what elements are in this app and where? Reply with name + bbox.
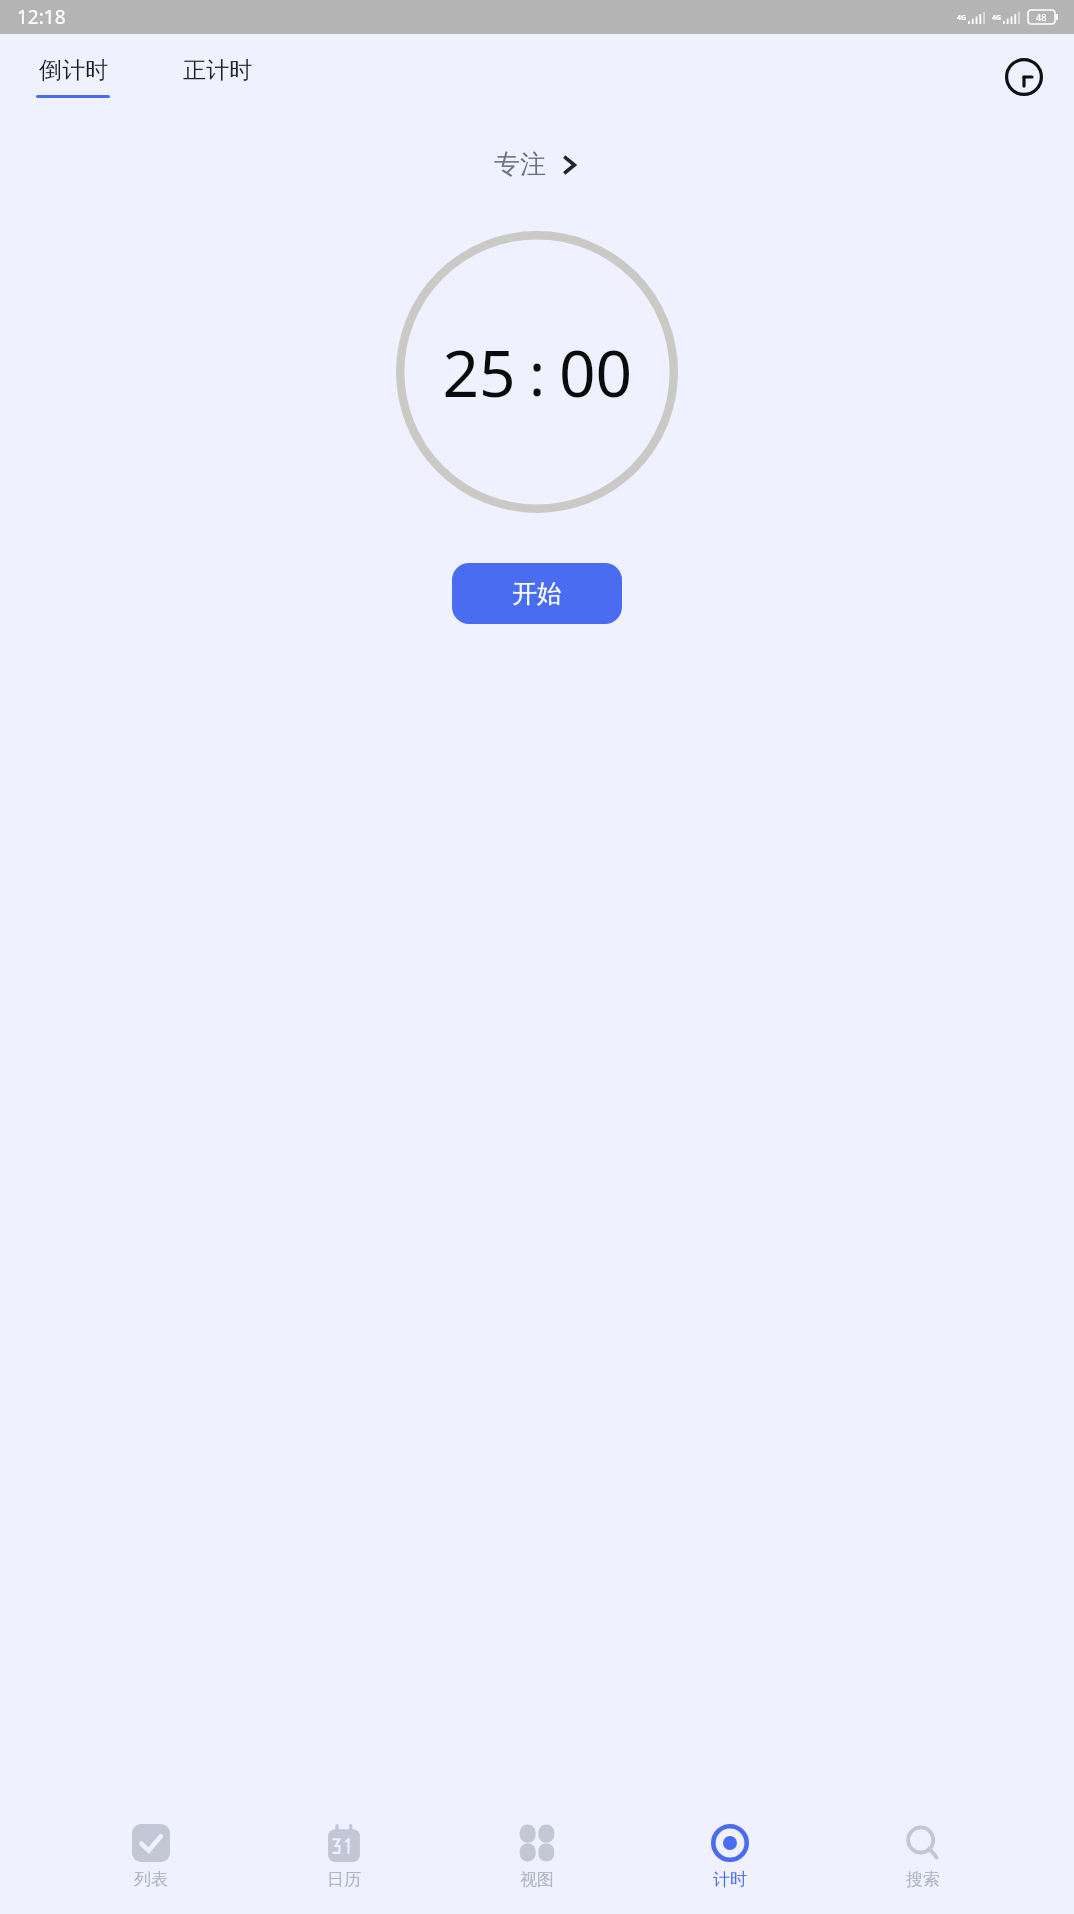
staticText: :: [529, 332, 546, 414]
staticText: 专注: [494, 148, 546, 181]
staticText: 00: [559, 329, 633, 416]
staticText: 4G: [957, 13, 967, 23]
staticText: 搜索: [906, 1869, 940, 1890]
button[interactable]: 倒计时: [14, 50, 132, 104]
button[interactable]: 视图: [495, 1806, 579, 1914]
staticText: 4G: [992, 13, 1002, 23]
button[interactable]: 开始: [452, 563, 622, 624]
button[interactable]: 专注: [0, 142, 1074, 187]
staticText: 视图: [520, 1869, 554, 1890]
staticText: 48: [1036, 11, 1047, 23]
button[interactable]: 日历: [302, 1806, 386, 1914]
staticText: 25: [442, 329, 516, 416]
staticText: 列表: [134, 1869, 168, 1890]
staticText: 开始: [512, 578, 562, 609]
staticText: 正计时: [183, 56, 252, 85]
button[interactable]: 历史记录: [996, 49, 1052, 105]
staticText: 计时: [713, 1869, 747, 1890]
button[interactable]: 列表: [109, 1806, 193, 1914]
button[interactable]: 计时: [688, 1806, 772, 1914]
staticText: 日历: [327, 1869, 361, 1890]
button[interactable]: 正计时: [158, 50, 276, 104]
staticText: 12:18: [17, 4, 66, 30]
staticText: 倒计时: [39, 56, 108, 85]
button[interactable]: 搜索: [881, 1806, 965, 1914]
